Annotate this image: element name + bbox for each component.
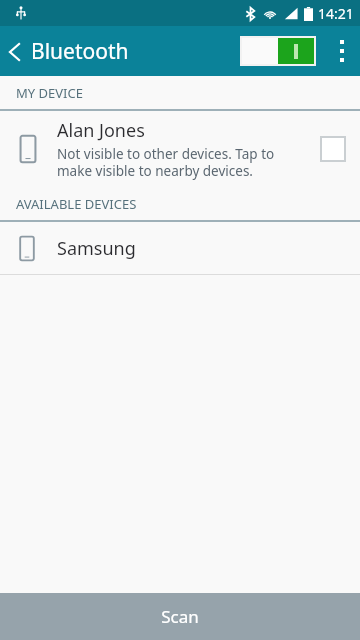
button[interactable]: Visibility checkbox: [320, 136, 346, 162]
staticText: Bluetooth: [31, 37, 129, 66]
button[interactable]: Scan: [0, 593, 360, 640]
staticText: AVAILABLE DEVICES: [16, 195, 137, 213]
button[interactable]: Alan Jones: [0, 111, 360, 187]
staticText: MY DEVICE: [16, 84, 83, 102]
staticText: Samsung: [57, 236, 136, 261]
staticText: Not visible to other devices. Tap to mak…: [57, 145, 310, 180]
button[interactable]: Bluetooth: [0, 31, 137, 72]
button[interactable]: Samsung: [0, 222, 360, 274]
button[interactable]: Bluetooth on/off toggle: [240, 36, 316, 66]
button[interactable]: More options: [324, 26, 360, 76]
staticText: 14:21: [318, 4, 354, 23]
staticText: Scan: [161, 605, 199, 628]
staticText: Alan Jones: [57, 118, 145, 143]
